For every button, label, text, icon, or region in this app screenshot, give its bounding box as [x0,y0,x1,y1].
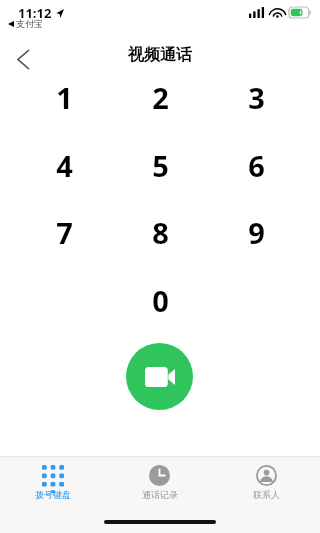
staticText: 11:12 [18,4,52,22]
staticText: 支付宝 [16,18,43,29]
staticText: 2 [152,78,169,117]
button[interactable]: 5 [129,140,191,190]
staticText: 联系人 [253,489,280,500]
staticText: 3 [248,78,265,117]
button[interactable]: 7 [33,207,95,257]
staticText: 9 [248,213,265,252]
button[interactable]: 2 [129,72,191,122]
staticText: 8 [152,213,169,252]
staticText: 5 [152,146,169,185]
staticText: 6 [248,146,265,185]
button[interactable]: 拨号键盘 [0,460,106,500]
button[interactable]: 8 [129,207,191,257]
staticText: 拨号键盘 [35,489,71,500]
staticText: 视频通话 [128,45,192,65]
button[interactable]: 联系人 [213,460,320,500]
button[interactable]: 1 [33,72,95,122]
button[interactable]: 4 [33,140,95,190]
button[interactable]: Back [6,42,40,76]
button[interactable]: 3 [225,72,287,122]
button[interactable]: 6 [225,140,287,190]
button[interactable]: Start video call [126,343,193,410]
staticText: 1 [56,78,73,117]
button[interactable]: 0 [129,275,191,325]
staticText: 通话记录 [142,489,178,500]
staticText: 7 [56,213,73,252]
staticText: 4 [56,146,73,185]
button[interactable]: 通话记录 [106,460,213,500]
staticText: 0 [152,281,169,320]
button[interactable]: 9 [225,207,287,257]
